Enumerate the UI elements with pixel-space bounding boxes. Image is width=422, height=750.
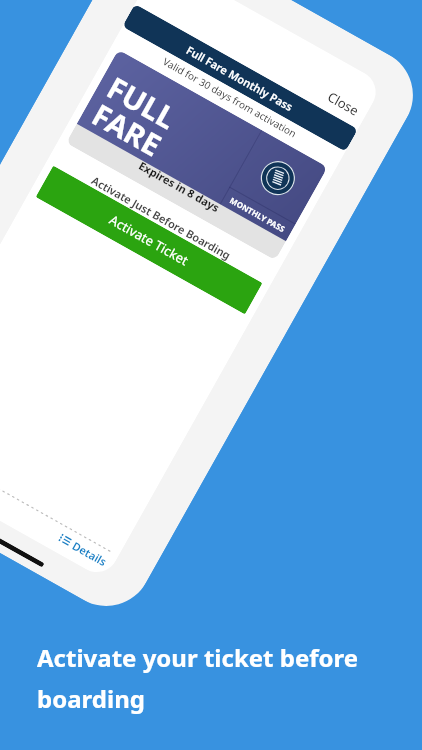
- staticText: Expires in 8 days: [136, 158, 223, 215]
- staticText: Close: [324, 88, 362, 119]
- staticText: Activate Ticket: [106, 211, 192, 269]
- staticText: Valid for 30 days from activation: [160, 54, 299, 140]
- staticText: Details: [70, 538, 110, 570]
- staticText: Activate your ticket before: [37, 641, 359, 674]
- staticText: FULL FARE: [85, 67, 251, 202]
- staticText: Activate Just Before Boarding: [89, 173, 234, 263]
- button[interactable]: Activate Ticket: [36, 166, 262, 314]
- button[interactable]: Close: [324, 88, 362, 119]
- staticText: boarding: [37, 682, 145, 715]
- staticText: MONTHLY PASS: [228, 194, 287, 234]
- button[interactable]: Details: [57, 531, 110, 570]
- staticText: Full Fare Monthly Pass: [184, 42, 296, 114]
